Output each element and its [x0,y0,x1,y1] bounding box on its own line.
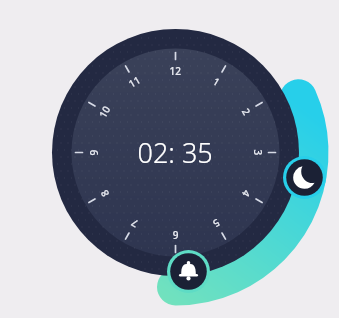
button[interactable]: Sleep duration 02:35 [122,124,229,182]
button[interactable]: Bedtime [283,160,326,203]
button[interactable]: Alarm [167,250,210,293]
